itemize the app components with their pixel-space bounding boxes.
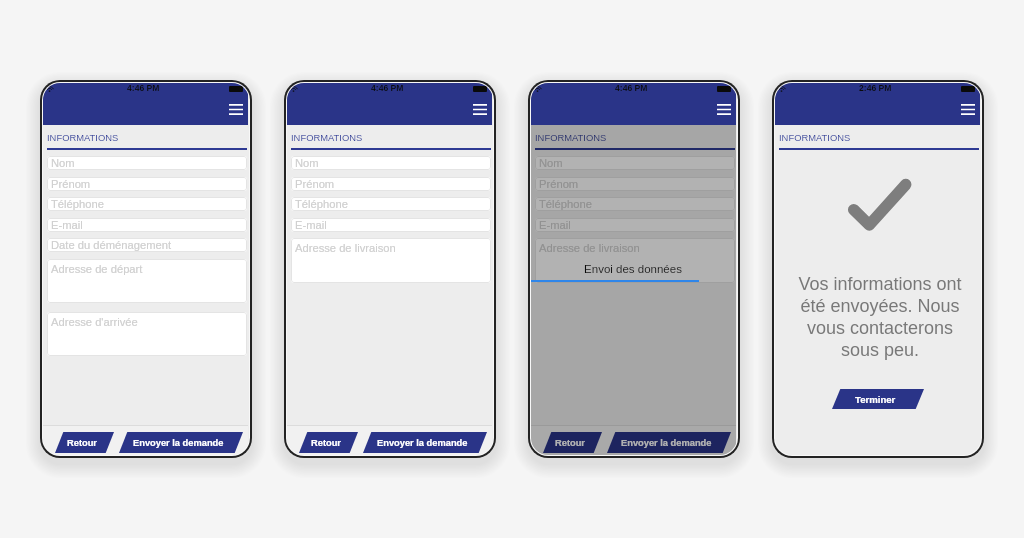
- button[interactable]: Prénom: [535, 177, 735, 191]
- button[interactable]: Téléphone: [47, 197, 247, 211]
- button[interactable]: Menu: [954, 98, 981, 120]
- staticText: Adresse d'arrivée: [51, 316, 138, 329]
- staticText: E-mail: [295, 219, 327, 232]
- button[interactable]: Nom: [535, 156, 735, 170]
- button[interactable]: Terminer: [832, 389, 924, 409]
- staticText: 4:46 PM: [371, 83, 404, 93]
- button[interactable]: Retour: [299, 432, 358, 453]
- staticText: E-mail: [51, 219, 83, 232]
- button[interactable]: Adresse d'arrivée: [47, 312, 247, 356]
- button[interactable]: Menu: [466, 98, 493, 120]
- button[interactable]: Envoyer la demande: [119, 432, 243, 453]
- button[interactable]: E-mail: [291, 218, 491, 232]
- staticText: E-mail: [539, 219, 571, 232]
- staticText: Adresse de départ: [51, 263, 143, 276]
- button[interactable]: Nom: [47, 156, 247, 170]
- staticText: 4:46 PM: [127, 83, 160, 93]
- staticText: Nom: [51, 157, 75, 170]
- staticText: Vos informations ont été envoyées. Nous …: [787, 274, 973, 360]
- staticText: Envoyer la demande: [621, 438, 712, 448]
- staticText: Retour: [555, 438, 585, 448]
- staticText: INFORMATIONS: [47, 132, 119, 143]
- button[interactable]: Téléphone: [535, 197, 735, 211]
- button[interactable]: Envoyer la demande: [607, 432, 731, 453]
- button[interactable]: Adresse de livraison: [535, 238, 735, 283]
- staticText: Envoi des données: [531, 263, 736, 276]
- staticText: Terminer: [855, 394, 896, 405]
- button[interactable]: Prénom: [291, 177, 491, 191]
- button[interactable]: Téléphone: [291, 197, 491, 211]
- staticText: Envoyer la demande: [133, 438, 224, 448]
- button[interactable]: Nom: [291, 156, 491, 170]
- staticText: INFORMATIONS: [779, 132, 851, 143]
- button[interactable]: E-mail: [535, 218, 735, 232]
- staticText: Téléphone: [539, 198, 592, 211]
- staticText: INFORMATIONS: [291, 132, 363, 143]
- button[interactable]: Menu: [710, 98, 737, 120]
- staticText: Téléphone: [51, 198, 104, 211]
- staticText: Prénom: [51, 178, 91, 191]
- staticText: Date du déménagement: [51, 239, 172, 252]
- staticText: Nom: [295, 157, 319, 170]
- staticText: Prénom: [539, 178, 579, 191]
- button[interactable]: Envoyer la demande: [363, 432, 487, 453]
- staticText: Adresse de livraison: [295, 242, 396, 255]
- button[interactable]: Date du déménagement: [47, 238, 247, 252]
- staticText: Retour: [311, 438, 341, 448]
- staticText: Retour: [67, 438, 97, 448]
- staticText: INFORMATIONS: [535, 132, 607, 143]
- staticText: Téléphone: [295, 198, 348, 211]
- button[interactable]: Retour: [543, 432, 602, 453]
- staticText: 2:46 PM: [859, 83, 892, 93]
- button[interactable]: Adresse de livraison: [291, 238, 491, 283]
- button[interactable]: E-mail: [47, 218, 247, 232]
- staticText: Nom: [539, 157, 563, 170]
- staticText: 4:46 PM: [615, 83, 648, 93]
- staticText: Prénom: [295, 178, 335, 191]
- button[interactable]: Retour: [55, 432, 114, 453]
- button[interactable]: Prénom: [47, 177, 247, 191]
- staticText: Envoyer la demande: [377, 438, 468, 448]
- button[interactable]: Menu: [222, 98, 249, 120]
- button[interactable]: Adresse de départ: [47, 259, 247, 303]
- staticText: Adresse de livraison: [539, 242, 640, 255]
